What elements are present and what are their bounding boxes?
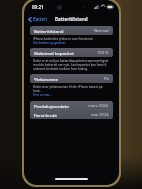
staticText: iPhone-batteriets ytelse er som forvente… [33, 37, 95, 41]
button[interactable]: Produksjonsdato [30, 101, 113, 119]
staticText: Dette viser ytelsesevnen til din iPhone … [33, 85, 110, 93]
staticText: Batteritilstand [55, 16, 88, 22]
staticText: 09:21 [32, 4, 44, 10]
staticText: Dette er et mål på batterikapasiteten sa… [33, 59, 110, 71]
staticText: 100 % [97, 50, 109, 56]
button[interactable]: Finn ut mer… [33, 93, 52, 97]
staticText: Først brukt [34, 112, 57, 118]
button[interactable]: Batteritilstand [30, 26, 113, 35]
button[interactable]: Batteri [24, 14, 51, 24]
staticText: mars 2024 [88, 103, 109, 109]
staticText: mai 2024 [91, 112, 109, 118]
button[interactable]: Ytelsesevne [30, 74, 113, 83]
staticText: Ytelsesevne [34, 76, 59, 82]
staticText: Maksimal kapasitet [34, 50, 74, 56]
staticText: Batteritilstand [34, 28, 64, 34]
button[interactable]: Maksimal kapasitet [30, 48, 113, 57]
staticText: Normal [94, 28, 109, 34]
button[interactable]: Om batteri og garanti… [33, 41, 68, 45]
staticText: Batteri [33, 16, 47, 22]
staticText: På [104, 76, 109, 82]
staticText: Produksjonsdato [34, 103, 69, 109]
